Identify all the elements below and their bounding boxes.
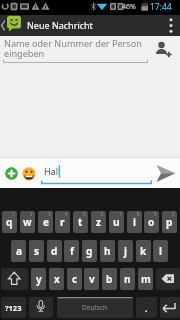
- button[interactable]: c: [67, 268, 82, 290]
- staticText: 8: [137, 211, 140, 217]
- button[interactable]: [164, 15, 180, 36]
- staticText: 5: [83, 211, 86, 217]
- button[interactable]: g: [82, 240, 97, 262]
- button[interactable]: f: [64, 240, 79, 262]
- staticText: Hall: [44, 165, 61, 177]
- staticText: y: [36, 272, 42, 286]
- staticText: s: [34, 244, 40, 258]
- staticText: q: [6, 215, 13, 229]
- button[interactable]: [57, 297, 133, 318]
- staticText: 3: [48, 211, 51, 217]
- staticText: e: [43, 215, 49, 229]
- staticText: z: [96, 215, 101, 229]
- staticText: 7: [119, 211, 122, 217]
- button[interactable]: u: [109, 211, 124, 233]
- staticText: u: [113, 215, 120, 229]
- button[interactable]: [1, 268, 28, 290]
- staticText: 46%: [122, 2, 136, 12]
- button[interactable]: [152, 38, 176, 60]
- staticText: v: [89, 272, 95, 286]
- staticText: w: [23, 215, 32, 229]
- staticText: r: [60, 215, 65, 229]
- staticText: c: [72, 272, 78, 286]
- staticText: d: [51, 244, 58, 258]
- button[interactable]: m: [138, 268, 153, 290]
- button[interactable]: Name oder Nummer der Person eingeben: [0, 36, 176, 66]
- staticText: 0: [172, 211, 175, 217]
- button[interactable]: z: [91, 211, 106, 233]
- button[interactable]: p: [162, 211, 177, 233]
- staticText: 9: [154, 211, 157, 217]
- button[interactable]: k: [136, 240, 151, 262]
- button[interactable]: i: [127, 211, 142, 233]
- staticText: i: [133, 215, 136, 229]
- button[interactable]: e: [38, 211, 53, 233]
- staticText: b: [106, 272, 113, 286]
- button[interactable]: b: [102, 268, 117, 290]
- button[interactable]: s: [29, 240, 44, 262]
- button[interactable]: o: [144, 211, 159, 233]
- staticText: m: [141, 272, 151, 286]
- button[interactable]: x: [49, 268, 64, 290]
- button[interactable]: y: [31, 268, 46, 290]
- staticText: l: [159, 244, 162, 258]
- staticText: o: [148, 215, 155, 229]
- button[interactable]: t: [73, 211, 88, 233]
- button[interactable]: [29, 297, 53, 318]
- staticText: t: [78, 215, 83, 229]
- staticText: x: [54, 272, 60, 286]
- staticText: 4: [65, 211, 68, 217]
- button[interactable]: [22, 167, 36, 181]
- staticText: k: [140, 244, 147, 258]
- button[interactable]: Hall: [40, 159, 156, 189]
- staticText: Deutsch: [82, 303, 108, 312]
- staticText: 2: [30, 211, 33, 217]
- button[interactable]: w: [20, 211, 35, 233]
- staticText: j: [124, 244, 127, 258]
- staticText: 6: [101, 211, 104, 217]
- button[interactable]: [0, 15, 24, 36]
- button[interactable]: ?123: [1, 297, 26, 318]
- staticText: n: [124, 272, 131, 286]
- button[interactable]: [154, 163, 178, 185]
- staticText: Name oder Nummer der Person eingeben: [4, 37, 142, 60]
- staticText: g: [86, 244, 93, 258]
- button[interactable]: [156, 268, 180, 290]
- button[interactable]: a: [11, 240, 26, 262]
- button[interactable]: r: [55, 211, 70, 233]
- staticText: ?123: [5, 303, 22, 313]
- button[interactable]: [5, 167, 18, 180]
- button[interactable]: d: [47, 240, 62, 262]
- button[interactable]: [160, 297, 180, 318]
- staticText: f: [70, 244, 74, 258]
- staticText: a: [16, 244, 22, 258]
- staticText: 17:44: [150, 1, 172, 13]
- button[interactable]: q: [2, 211, 17, 233]
- staticText: h: [104, 244, 111, 258]
- button[interactable]: l: [153, 240, 168, 262]
- button[interactable]: .: [136, 297, 157, 318]
- button[interactable]: v: [84, 268, 99, 290]
- button[interactable]: n: [120, 268, 135, 290]
- staticText: .: [145, 302, 148, 314]
- staticText: Neue Nachricht: [27, 19, 93, 31]
- button[interactable]: j: [118, 240, 133, 262]
- staticText: 1: [12, 211, 15, 217]
- button[interactable]: h: [100, 240, 115, 262]
- staticText: p: [166, 215, 173, 229]
